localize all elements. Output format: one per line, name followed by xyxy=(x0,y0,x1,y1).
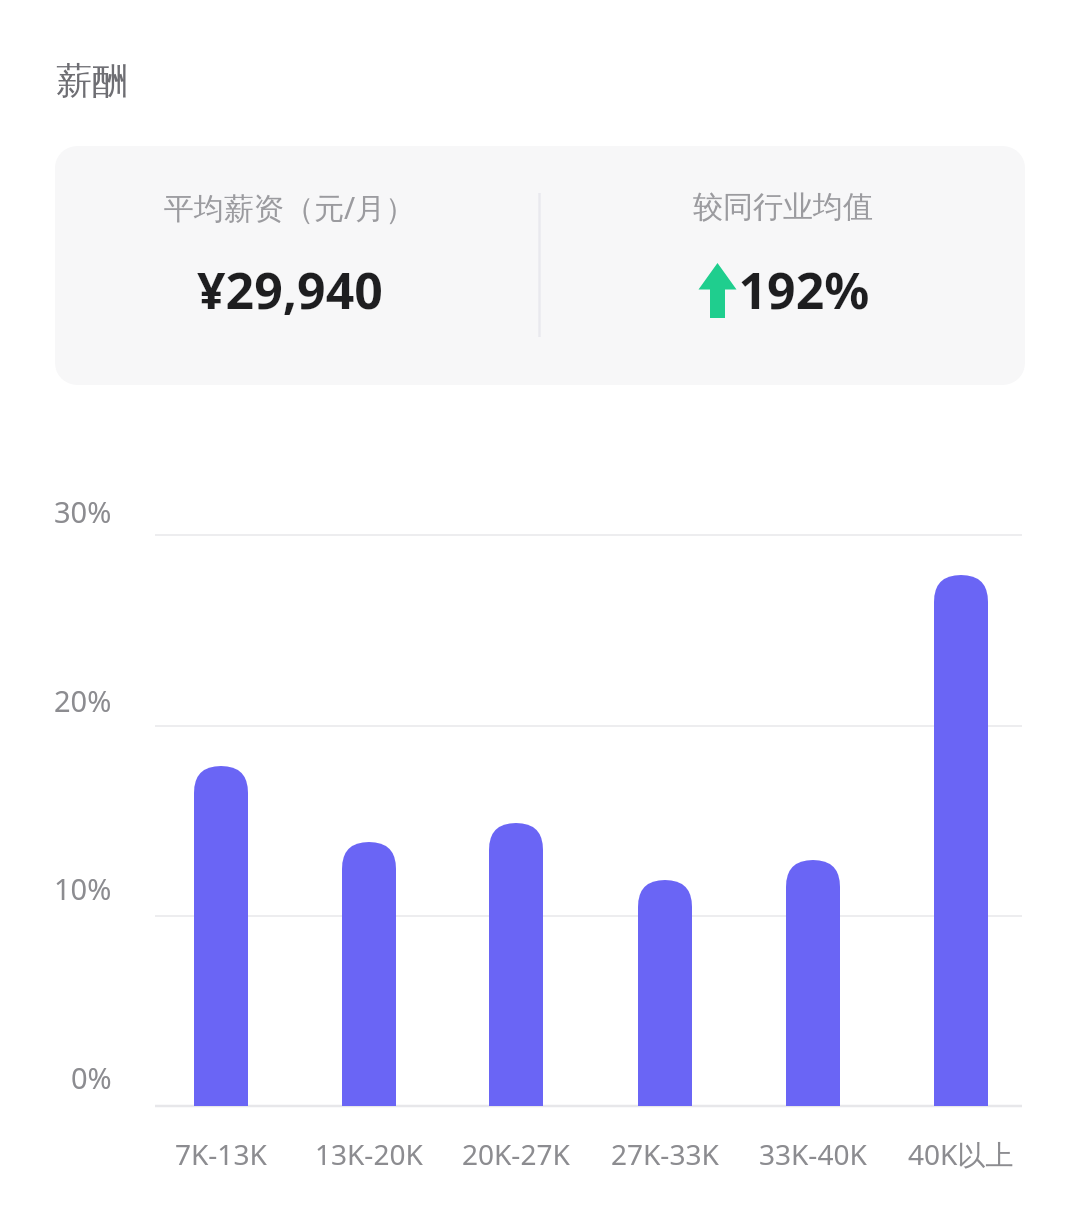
button[interactable]: 较同行业均值上升 192% xyxy=(550,170,1010,360)
button[interactable]: 平均薪资 29940 元每月 xyxy=(70,170,530,360)
button[interactable]: 平均薪资与行业对比 xyxy=(55,146,1025,385)
button[interactable]: 薪资分布柱状图 xyxy=(55,470,1025,1180)
